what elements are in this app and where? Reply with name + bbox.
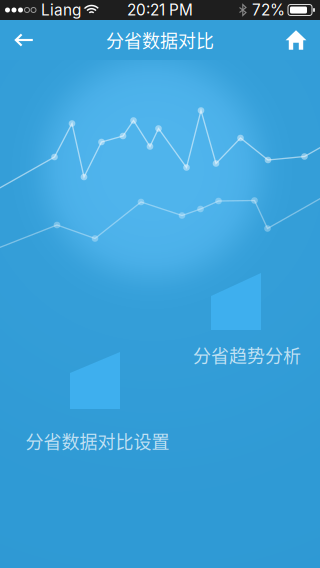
staticText: 72% xyxy=(252,1,285,19)
button[interactable]: Home xyxy=(272,20,320,60)
staticText: 分省数据对比设置 xyxy=(25,428,169,454)
button[interactable]: 分省趋势分析 xyxy=(0,0,320,568)
staticText: 20:21 PM xyxy=(127,1,193,19)
staticText: Liang xyxy=(41,1,81,19)
button[interactable]: Back xyxy=(0,20,48,60)
staticText: 分省数据对比 xyxy=(106,27,214,53)
staticText: 分省趋势分析 xyxy=(193,342,301,368)
button[interactable]: 分省数据对比设置 xyxy=(0,0,320,568)
